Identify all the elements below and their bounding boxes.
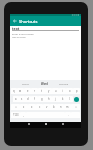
button[interactable]: d xyxy=(25,96,31,102)
staticText: n xyxy=(60,105,62,109)
staticText: v xyxy=(46,105,48,109)
staticText: y xyxy=(48,89,50,93)
staticText: l xyxy=(69,97,70,101)
staticText: e xyxy=(27,89,29,93)
staticText: s xyxy=(21,97,23,101)
staticText: i xyxy=(62,89,63,93)
button[interactable]: v xyxy=(43,104,50,110)
staticText: j xyxy=(55,97,56,101)
staticText: Shortcuts xyxy=(19,19,38,24)
staticText: Word xyxy=(41,82,48,86)
button[interactable]: s xyxy=(19,96,25,102)
button[interactable]: b xyxy=(50,104,57,110)
staticText: b xyxy=(53,105,55,109)
staticText: r xyxy=(34,89,36,93)
button[interactable]: p xyxy=(73,88,80,94)
button[interactable]: k xyxy=(59,96,66,102)
button[interactable]: y xyxy=(45,88,52,94)
button[interactable]: e xyxy=(24,88,31,94)
button[interactable]: q xyxy=(11,88,17,94)
button[interactable]: l xyxy=(66,96,73,102)
button[interactable]: m xyxy=(64,104,71,110)
button[interactable]: r xyxy=(31,88,38,94)
staticText: q xyxy=(13,89,15,93)
staticText: f xyxy=(34,97,35,101)
button[interactable]: i xyxy=(59,88,66,94)
button[interactable]: ?123 xyxy=(11,112,20,118)
button[interactable]: g xyxy=(38,96,45,102)
staticText: z xyxy=(23,105,25,109)
staticText: m xyxy=(66,105,69,109)
staticText: u xyxy=(55,89,57,93)
staticText: wording xyxy=(59,82,69,85)
staticText: p xyxy=(76,89,78,93)
staticText: , xyxy=(23,113,24,117)
staticText: h xyxy=(48,97,50,101)
button[interactable]: o xyxy=(66,88,73,94)
button[interactable]: u xyxy=(52,88,59,94)
staticText: a xyxy=(15,97,17,101)
button[interactable]: z xyxy=(20,104,28,110)
staticText: o xyxy=(69,89,71,93)
button[interactable]: w xyxy=(17,88,24,94)
staticText: ?123 xyxy=(13,113,19,117)
staticText: text xyxy=(12,26,20,30)
button[interactable]: n xyxy=(57,104,64,110)
button[interactable]: t xyxy=(38,88,45,94)
staticText: c xyxy=(39,105,41,109)
button[interactable]: f xyxy=(31,96,38,102)
button[interactable]: x xyxy=(28,104,36,110)
staticText: . xyxy=(68,113,69,117)
staticText: d xyxy=(27,97,29,101)
button[interactable]: Enter xyxy=(74,97,79,102)
button[interactable]: a xyxy=(13,96,19,102)
button[interactable]: Back xyxy=(10,16,19,26)
staticText: Max 20 chars xyxy=(12,36,26,39)
staticText: g xyxy=(41,97,43,101)
staticText: k xyxy=(62,97,64,101)
staticText: t xyxy=(41,89,42,93)
staticText: w xyxy=(19,89,22,93)
button[interactable]: c xyxy=(36,104,43,110)
button[interactable]: , xyxy=(20,112,26,118)
button[interactable]: j xyxy=(52,96,59,102)
staticText: x xyxy=(31,105,33,109)
button[interactable]: Shift xyxy=(11,104,20,110)
staticText: Enter a short name xyxy=(12,32,34,35)
button[interactable]: h xyxy=(45,96,52,102)
button[interactable]: Backspace xyxy=(71,104,80,110)
staticText: words xyxy=(22,82,29,85)
